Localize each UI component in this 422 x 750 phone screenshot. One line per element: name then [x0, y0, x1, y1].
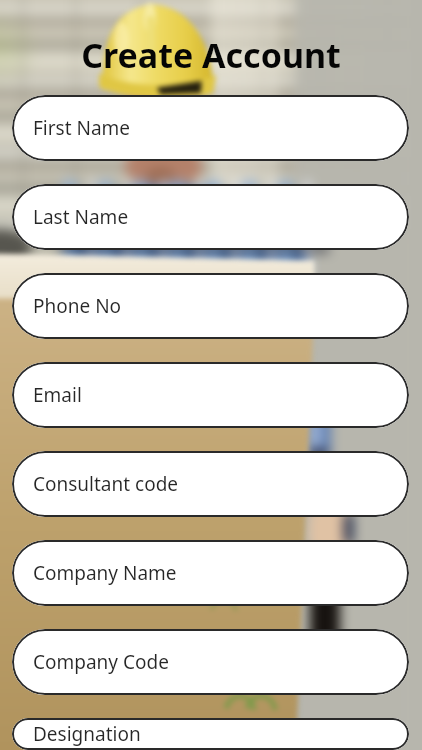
staticText: First Name — [33, 115, 131, 141]
button[interactable]: First Name — [12, 95, 409, 161]
button[interactable]: Consultant code — [12, 451, 409, 517]
button[interactable]: Designation — [12, 718, 409, 750]
staticText: Designation — [33, 721, 141, 747]
button[interactable]: Phone No — [12, 273, 409, 339]
staticText: Phone No — [33, 293, 122, 319]
staticText: Email — [33, 382, 82, 408]
staticText: Last Name — [33, 204, 129, 230]
button[interactable]: Company Name — [12, 540, 409, 606]
button[interactable]: Email — [12, 362, 409, 428]
button[interactable]: Last Name — [12, 184, 409, 250]
staticText: Consultant code — [33, 471, 179, 497]
staticText: Create Account — [0, 32, 422, 78]
button[interactable]: Company Code — [12, 629, 409, 695]
staticText: Company Code — [33, 649, 169, 675]
staticText: Company Name — [33, 560, 177, 586]
